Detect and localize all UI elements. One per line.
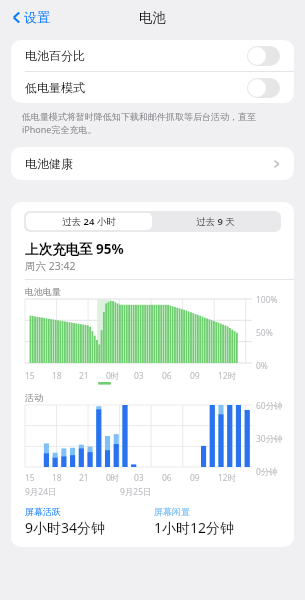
- button[interactable]: 设置: [8, 4, 54, 30]
- staticText: 周六 23:42: [25, 259, 76, 273]
- staticText: 电池健康: [25, 156, 73, 171]
- staticText: 低电量模式: [25, 80, 85, 95]
- staticText: 电池: [139, 9, 166, 26]
- staticText: 0%: [256, 360, 268, 372]
- staticText: 21: [79, 472, 89, 484]
- staticText: 09: [190, 370, 200, 382]
- staticText: 09: [190, 472, 200, 484]
- staticText: 100%: [256, 294, 278, 306]
- staticText: 0分钟: [256, 466, 278, 478]
- staticText: 12时: [218, 472, 237, 484]
- staticText: 电池电量: [25, 286, 61, 297]
- staticText: 9小时34分钟: [25, 518, 106, 537]
- staticText: 60分钟: [256, 400, 283, 412]
- staticText: 9月24日: [25, 486, 57, 498]
- staticText: 18: [52, 472, 62, 484]
- staticText: 12时: [218, 370, 237, 382]
- button[interactable]: 电池百分比: [11, 40, 294, 71]
- staticText: 18: [52, 370, 62, 382]
- button[interactable]: 过去 9 天: [152, 213, 279, 230]
- staticText: 50%: [256, 327, 273, 339]
- staticText: 9月25日: [120, 486, 152, 498]
- staticText: 30分钟: [256, 433, 283, 445]
- staticText: 03: [134, 472, 144, 484]
- staticText: 过去 9 天: [196, 215, 235, 228]
- staticText: 屏幕活跃: [25, 506, 61, 517]
- staticText: 上次充电至 95%: [25, 240, 124, 258]
- button[interactable]: 低电量模式: [11, 72, 294, 103]
- staticText: 06: [162, 370, 172, 382]
- other: 电池健康: [273, 158, 280, 170]
- staticText: 21: [79, 370, 89, 382]
- staticText: 15: [25, 370, 35, 382]
- staticText: 03: [134, 370, 144, 382]
- button[interactable]: 电池健康: [11, 147, 294, 180]
- staticText: 0时: [106, 472, 120, 484]
- staticText: 1小时12分钟: [154, 518, 235, 537]
- button[interactable]: 过去 24 小时: [26, 213, 152, 230]
- staticText: 过去 24 小时: [62, 215, 116, 228]
- staticText: 屏幕闲置: [154, 506, 190, 517]
- staticText: 电池百分比: [25, 48, 85, 63]
- staticText: 0时: [106, 370, 120, 382]
- staticText: 06: [162, 472, 172, 484]
- staticText: 15: [25, 472, 35, 484]
- staticText: 低电量模式将暂时降低知下载和邮件抓取等后台活动，直至 iPhone完全充电。: [22, 110, 285, 135]
- staticText: 设置: [24, 9, 50, 25]
- staticText: 活动: [25, 392, 43, 403]
